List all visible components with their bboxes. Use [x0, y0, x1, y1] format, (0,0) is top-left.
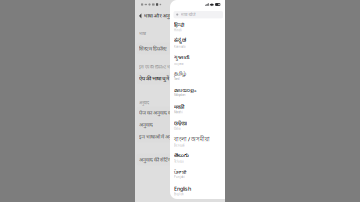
staticText: हिन्दी: [174, 21, 184, 28]
staticText: Kannada: [174, 45, 185, 48]
staticText: Odia: [174, 127, 180, 130]
staticText: अनुवाद: [139, 121, 153, 128]
button[interactable]: ଓଡ଼ିଆ: [170, 117, 225, 133]
staticText: सिस्टम डिफ़ॉल्ट: [139, 45, 167, 52]
staticText: इन भाषाओं में अनुवाद न करें: [139, 133, 190, 140]
button[interactable]: हिन्दी: [170, 18, 225, 35]
staticText: अनुवाद: [139, 100, 149, 105]
staticText: इस ऐप की डिफ़ॉल्ट भाषा: [139, 64, 174, 70]
staticText: मराठी: [174, 103, 184, 110]
staticText: ଓଡ଼ିଆ: [174, 120, 187, 127]
staticText: Telugu: [174, 160, 184, 163]
staticText: తెలుగు: [174, 152, 189, 159]
button[interactable]: इन भाषाओं में अनुवाद न करें: [136, 130, 223, 142]
staticText: മലയാളം: [174, 88, 196, 93]
button[interactable]: বাংলা / অসমীয়া: [170, 133, 225, 150]
button[interactable]: தமிழ்: [170, 68, 225, 84]
staticText: भाषा खोजें: [180, 12, 195, 17]
staticText: ऐप की भाषा चुनें: [139, 75, 169, 82]
button[interactable]: ਪੰਜਾਬੀ: [170, 166, 225, 182]
button[interactable]: सिस्टम डिफ़ॉल्ट: [136, 42, 223, 54]
button[interactable]: తెలుగు: [170, 150, 225, 166]
button[interactable]: अनुवाद: [136, 118, 223, 130]
staticText: अनुवाद की सेटिंग बदलें: [139, 156, 182, 163]
staticText: भाषा: [139, 31, 146, 36]
button[interactable]: ગુજરાતી: [170, 51, 225, 68]
staticText: Hindi: [174, 28, 182, 32]
button[interactable]: ऐप की भाषा चुनें: [136, 72, 223, 84]
button[interactable]: अनुवाद की सेटिंग बदलें: [136, 153, 223, 165]
staticText: ਪੰਜਾਬੀ: [174, 170, 187, 175]
staticText: English: [174, 185, 191, 192]
button[interactable]: English: [170, 182, 225, 199]
staticText: Tamil: [174, 77, 180, 81]
staticText: English: [174, 192, 184, 196]
staticText: ಕನ್ನಡ: [174, 38, 186, 45]
staticText: Marathi: [174, 110, 183, 114]
staticText: पेज का अनुवाद करें, जिनमें वे भी: [139, 109, 197, 116]
staticText: Gujarati: [174, 62, 184, 66]
staticText: বাংলা / অসমীয়া: [174, 136, 210, 143]
button[interactable]: भाषा खोजें: [170, 9, 225, 18]
staticText: ગુજરાતી: [174, 53, 189, 62]
staticText: Punjabi: [174, 175, 185, 179]
staticText: Malayalam: [174, 93, 185, 97]
button[interactable]: ಕನ್ನಡ: [170, 35, 225, 51]
button[interactable]: മലയാളം: [170, 84, 225, 100]
button[interactable]: मराठी: [170, 100, 225, 117]
staticText: भाषा और अनुवाद: [143, 12, 176, 19]
staticText: Bengali: [174, 144, 185, 147]
staticText: தமிழ்: [174, 71, 186, 77]
button[interactable]: पेज का अनुवाद करें, जिनमें वे भी: [136, 106, 223, 118]
